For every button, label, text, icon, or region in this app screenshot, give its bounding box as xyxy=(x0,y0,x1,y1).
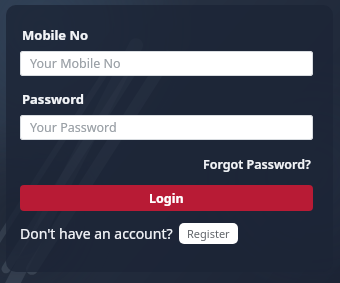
staticText: Password xyxy=(22,90,84,108)
staticText: Login xyxy=(149,190,184,207)
button[interactable]: Forgot Password? xyxy=(201,154,313,175)
staticText: Mobile No xyxy=(22,26,89,44)
staticText: Register xyxy=(187,226,230,241)
button[interactable]: Your Mobile No xyxy=(20,51,313,76)
staticText: Forgot Password? xyxy=(203,156,311,173)
button[interactable]: Register xyxy=(179,223,238,244)
button[interactable]: Your Password xyxy=(20,115,313,140)
staticText: Your Password xyxy=(30,119,117,136)
staticText: Your Mobile No xyxy=(30,55,121,72)
staticText: Don't have an account? xyxy=(20,224,173,243)
button[interactable]: Login xyxy=(20,185,313,211)
